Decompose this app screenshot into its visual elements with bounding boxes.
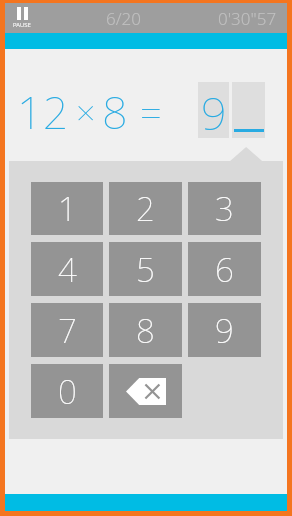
- button[interactable]: 9: [188, 303, 261, 357]
- button[interactable]: Backspace: [109, 364, 182, 418]
- staticText: 7: [58, 308, 77, 353]
- staticText: ×: [76, 89, 96, 135]
- staticText: 9: [215, 308, 234, 353]
- staticText: 12: [17, 81, 69, 142]
- staticText: 1: [58, 186, 77, 231]
- button[interactable]: 7: [31, 303, 103, 357]
- staticText: 0'30"57: [218, 7, 277, 30]
- staticText: =: [140, 86, 162, 138]
- button[interactable]: 8: [109, 303, 182, 357]
- button[interactable]: 6: [188, 242, 261, 296]
- button[interactable]: 5: [109, 242, 182, 296]
- staticText: 2: [136, 186, 155, 231]
- button[interactable]: 1: [31, 182, 103, 235]
- staticText: 8: [136, 308, 155, 353]
- staticText: 5: [136, 247, 155, 292]
- button[interactable]: 2: [109, 182, 182, 235]
- staticText: 6: [215, 247, 234, 292]
- staticText: 9: [201, 82, 227, 138]
- staticText: 4: [58, 247, 77, 292]
- staticText: 3: [215, 186, 234, 231]
- staticText: 6/20: [106, 7, 142, 30]
- staticText: 8: [102, 81, 128, 142]
- staticText: PAUSE: [13, 21, 31, 29]
- button[interactable]: 0: [31, 364, 103, 418]
- staticText: 0: [58, 369, 77, 414]
- button[interactable]: 3: [188, 182, 261, 235]
- button[interactable]: 4: [31, 242, 103, 296]
- button[interactable]: Pause: [13, 7, 31, 29]
